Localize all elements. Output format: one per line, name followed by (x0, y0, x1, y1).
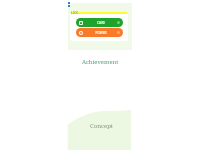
staticText: Achievement (82, 58, 119, 66)
staticText: CARE (97, 21, 105, 25)
staticText: Concept (90, 122, 113, 130)
button[interactable]: Remove (117, 31, 120, 34)
button[interactable]: CARE (76, 18, 123, 27)
button[interactable]: More options (68, 1, 71, 8)
button[interactable]: POWER (76, 28, 123, 37)
staticText: POWER (95, 31, 107, 35)
button[interactable]: Info (117, 21, 120, 24)
staticText: LXX (71, 10, 78, 15)
